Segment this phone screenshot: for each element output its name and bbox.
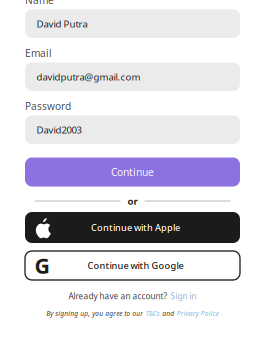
staticText: Password: [25, 99, 71, 113]
button[interactable]: Continue with Apple: [25, 212, 240, 243]
staticText: Continue with Apple: [91, 221, 180, 234]
staticText: Privacy Police: [177, 309, 219, 318]
button[interactable]: T&Cs: [146, 309, 160, 318]
staticText: By signing up, you agree to our: [46, 309, 143, 318]
staticText: or: [127, 194, 137, 208]
staticText: Continue with Google: [87, 259, 183, 272]
button[interactable]: Privacy Police: [177, 309, 219, 318]
staticText: davidputra@gmail.com: [36, 70, 140, 83]
staticText: David Putra: [36, 17, 87, 30]
staticText: Name: [25, 0, 54, 7]
staticText: T&Cs: [146, 309, 160, 318]
staticText: and: [162, 309, 174, 318]
staticText: Email: [25, 46, 52, 60]
staticText: G: [34, 251, 49, 280]
staticText: Continue: [111, 165, 154, 179]
button[interactable]: Continue with Google: [25, 251, 240, 280]
button[interactable]: Continue: [25, 157, 240, 186]
button[interactable]: Sign in: [170, 290, 196, 302]
staticText: Already have an account?: [68, 290, 167, 302]
staticText: Sign in: [170, 290, 196, 302]
staticText: David2003: [36, 123, 81, 136]
